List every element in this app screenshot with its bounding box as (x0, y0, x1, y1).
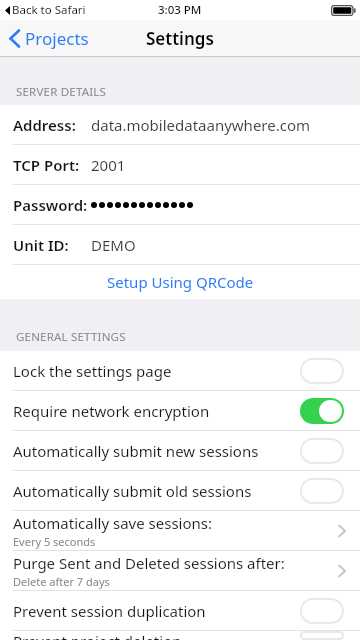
staticText: 3:03 PM (158, 2, 202, 18)
button[interactable]: Require network encryption (0, 391, 360, 430)
staticText: Automatically save sessions: (13, 513, 212, 533)
button[interactable]: Lock the settings page (0, 351, 360, 390)
other: Battery (331, 5, 356, 16)
staticText: Lock the settings page (13, 361, 300, 381)
staticText: Unit ID: (13, 235, 69, 255)
staticText: Back to Safari (12, 2, 86, 18)
staticText: Automatically submit old sessions (13, 481, 300, 501)
staticText: DEMO (91, 235, 136, 255)
button[interactable]: Password: (0, 185, 360, 224)
staticText: Purge Sent and Deleted sessions after: (13, 553, 285, 573)
button[interactable]: Prevent session duplication (0, 591, 360, 630)
staticText: Prevent session duplication (13, 601, 300, 621)
staticText: Prevent project deletion (13, 631, 300, 640)
staticText: Automatically submit new sessions (13, 441, 300, 461)
button[interactable]: Purge Sent and Deleted sessions after: (0, 551, 360, 590)
button[interactable]: Projects (0, 23, 99, 54)
button[interactable]: Prevent project deletion (0, 631, 360, 640)
staticText: Delete after 7 days (13, 574, 110, 589)
button[interactable]: Setup Using QRCode (0, 265, 360, 299)
staticText: Setup Using QRCode (107, 272, 254, 292)
button[interactable]: Automatically submit new sessions (0, 431, 360, 470)
button[interactable]: Automatically save sessions: (0, 511, 360, 550)
button[interactable]: Unit ID: (0, 225, 360, 264)
staticText: Require network encryption (13, 401, 300, 421)
button[interactable]: Address: (0, 105, 360, 144)
staticText: SERVER DETAILS (16, 84, 107, 100)
staticText: Every 5 seconds (13, 534, 96, 549)
staticText: Settings (146, 27, 214, 50)
staticText: TCP Port: (13, 155, 80, 175)
staticText: Projects (25, 27, 89, 50)
staticText: Password: (13, 195, 88, 215)
button[interactable]: TCP Port: (0, 145, 360, 184)
staticText: GENERAL SETTINGS (16, 329, 126, 345)
button[interactable]: Automatically submit old sessions (0, 471, 360, 510)
staticText: Address: (13, 115, 76, 135)
staticText: 2001 (91, 155, 126, 175)
staticText: data.mobiledataanywhere.com (91, 115, 311, 135)
